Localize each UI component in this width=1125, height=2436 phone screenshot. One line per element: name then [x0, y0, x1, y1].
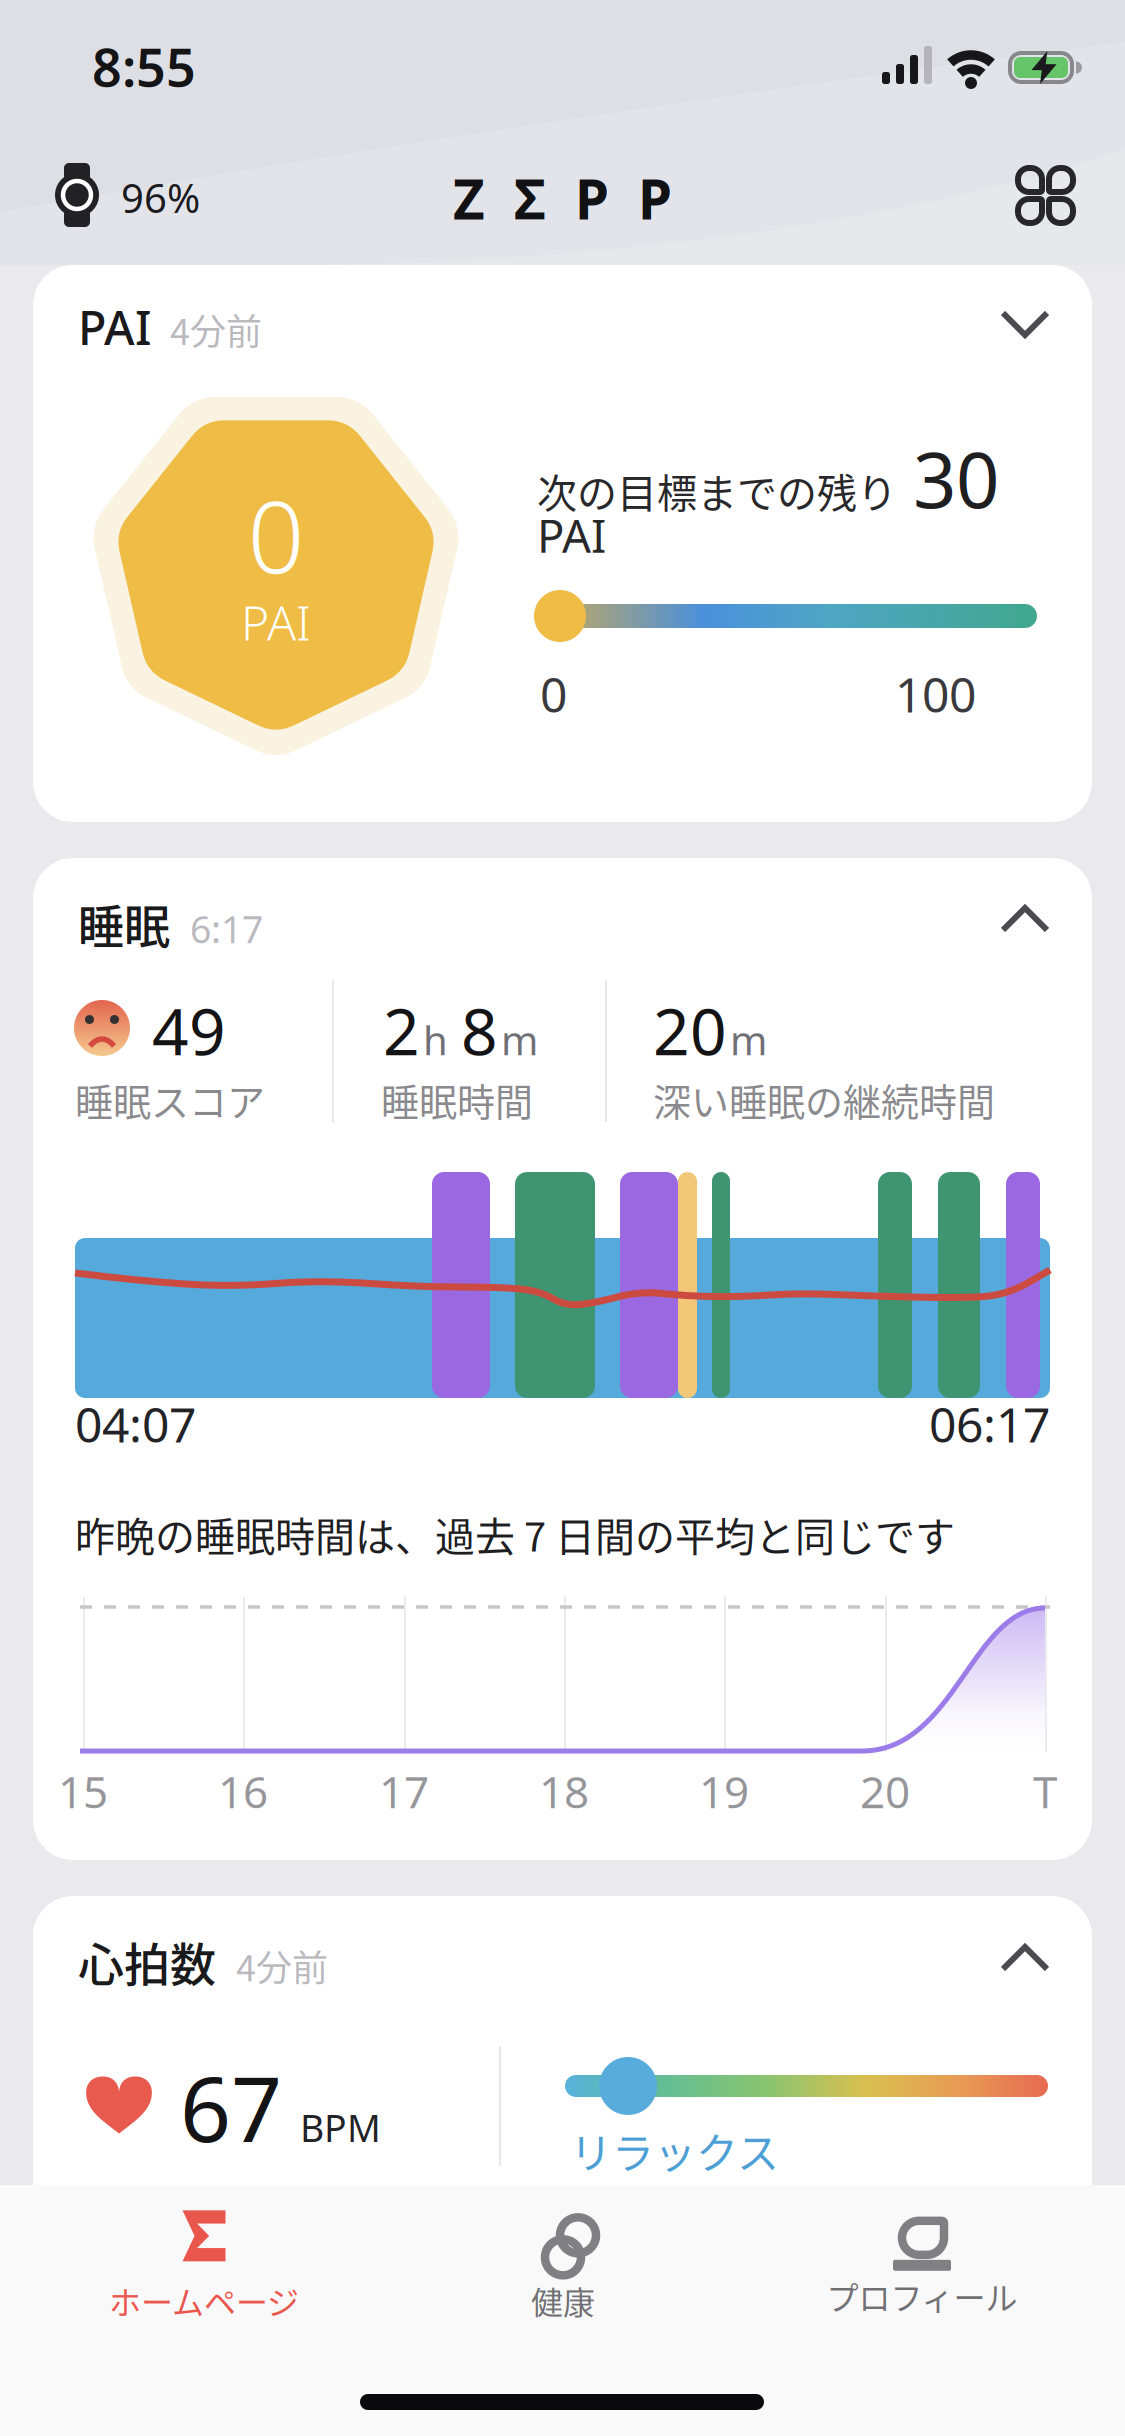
- staticText: m: [730, 1013, 767, 1066]
- staticText: 8: [461, 988, 498, 1073]
- staticText: 20: [860, 1762, 910, 1820]
- staticText: 0: [247, 468, 304, 601]
- staticText: PAI: [537, 505, 606, 565]
- staticText: ホームページ: [109, 2277, 299, 2324]
- staticText: 30: [913, 428, 999, 529]
- staticText: 04:07: [75, 1392, 196, 1456]
- staticText: 健康: [531, 2277, 595, 2324]
- button[interactable]: 健康: [531, 2206, 595, 2324]
- staticText: 深い睡眠の継続時間: [653, 1072, 995, 1127]
- button[interactable]: Collapse heart rate: [993, 1937, 1057, 1979]
- staticText: 昨晩の睡眠時間は、過去 7 日間の平均と同じです: [75, 1505, 955, 1563]
- staticText: 次の目標までの残り: [537, 462, 897, 519]
- button[interactable]: Watch faces: [1015, 165, 1076, 226]
- staticText: 心拍数: [78, 1928, 216, 1995]
- staticText: m: [501, 1013, 538, 1066]
- staticText: 睡眠時間: [381, 1072, 533, 1127]
- staticText: 19: [699, 1762, 749, 1820]
- staticText: BPM: [300, 2103, 381, 2152]
- staticText: PAI: [78, 296, 152, 358]
- button[interactable]: ホームページ: [109, 2210, 299, 2324]
- staticText: 睡眠スコア: [75, 1072, 265, 1127]
- staticText: 睡眠: [78, 890, 170, 957]
- staticText: 4分前: [236, 1940, 328, 1992]
- staticText: 17: [379, 1762, 429, 1820]
- button[interactable]: Watch battery 96%: [55, 163, 205, 227]
- staticText: 6:17: [190, 904, 263, 954]
- staticText: 100: [895, 662, 976, 726]
- staticText: 8:55: [92, 32, 196, 101]
- staticText: 4分前: [170, 303, 262, 355]
- button[interactable]: プロフィール: [826, 2207, 1017, 2319]
- staticText: 2: [383, 988, 420, 1073]
- staticText: PAI: [241, 590, 311, 654]
- staticText: 18: [539, 1762, 589, 1820]
- staticText: Z Σ P P: [453, 162, 672, 235]
- staticText: 96%: [121, 171, 200, 224]
- staticText: リラックス: [570, 2120, 779, 2181]
- staticText: h: [423, 1013, 458, 1066]
- staticText: 49: [152, 988, 226, 1073]
- staticText: 06:17: [929, 1392, 1050, 1456]
- staticText: 0: [540, 662, 567, 726]
- staticText: 67: [180, 2048, 282, 2167]
- staticText: 20: [653, 988, 727, 1073]
- button[interactable]: Collapse PAI: [993, 303, 1057, 345]
- button[interactable]: Collapse sleep: [993, 898, 1057, 940]
- staticText: プロフィール: [826, 2273, 1017, 2319]
- staticText: T: [1033, 1762, 1057, 1820]
- staticText: 15: [58, 1762, 108, 1820]
- staticText: 16: [218, 1762, 268, 1820]
